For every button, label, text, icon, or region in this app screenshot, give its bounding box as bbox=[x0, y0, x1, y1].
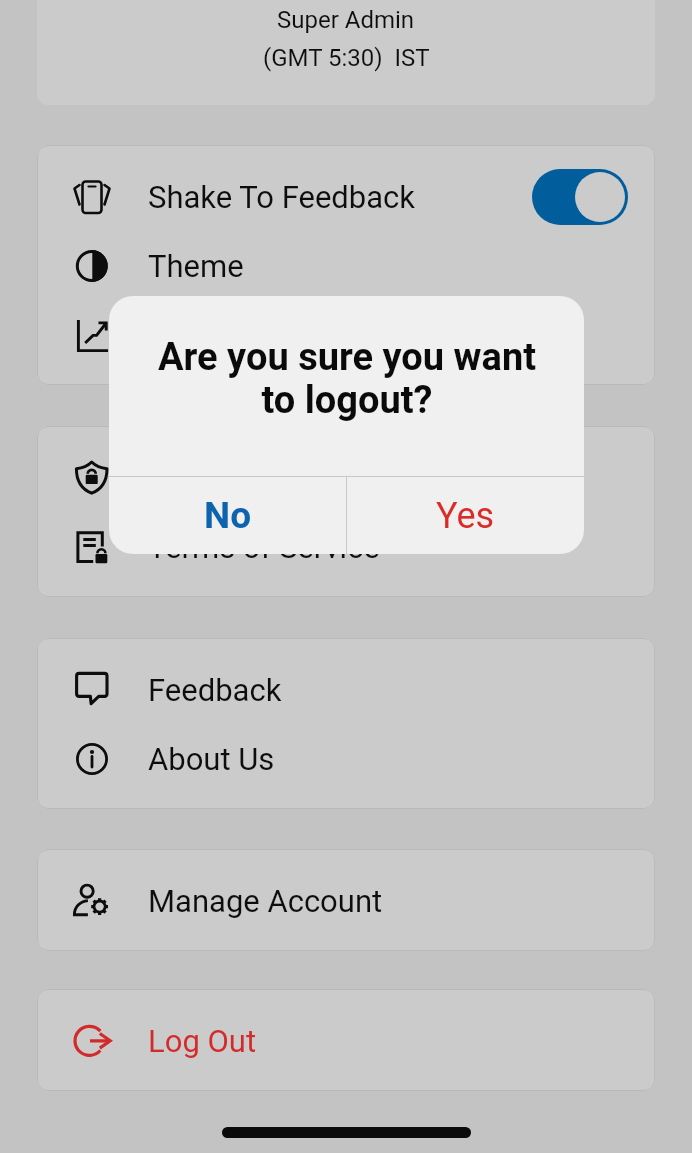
staticText: About Us bbox=[148, 741, 275, 777]
staticText: Privacy Policy bbox=[148, 460, 339, 496]
staticText: No bbox=[204, 494, 252, 537]
button[interactable]: About Us bbox=[37, 724, 655, 793]
button[interactable]: Terms of Service bbox=[37, 512, 655, 581]
staticText: Are you sure you want to logout? bbox=[151, 335, 543, 422]
staticText: Yes bbox=[436, 495, 495, 537]
staticText: Shake To Feedback bbox=[148, 179, 416, 215]
button[interactable]: Log Out bbox=[37, 1006, 655, 1075]
button[interactable]: Privacy Policy bbox=[37, 443, 655, 512]
staticText: Super Admin bbox=[277, 6, 415, 34]
button[interactable]: Yes bbox=[347, 477, 584, 554]
button[interactable]: No bbox=[109, 477, 346, 554]
button[interactable]: Analytics bbox=[37, 300, 655, 369]
staticText: Analytics bbox=[148, 317, 275, 353]
staticText: Terms of Service bbox=[148, 529, 380, 565]
staticText: Theme bbox=[148, 248, 244, 284]
staticText: Log Out bbox=[148, 1023, 257, 1059]
button[interactable]: Feedback bbox=[37, 655, 655, 724]
button[interactable]: Theme bbox=[37, 231, 655, 300]
staticText: (GMT 5:30) IST bbox=[263, 44, 430, 72]
staticText: Feedback bbox=[148, 672, 282, 708]
button[interactable]: Shake to feedback toggle bbox=[532, 169, 628, 225]
button[interactable]: Manage Account bbox=[37, 866, 655, 935]
staticText: Manage Account bbox=[148, 883, 383, 919]
button[interactable]: Shake To Feedback bbox=[37, 162, 655, 231]
